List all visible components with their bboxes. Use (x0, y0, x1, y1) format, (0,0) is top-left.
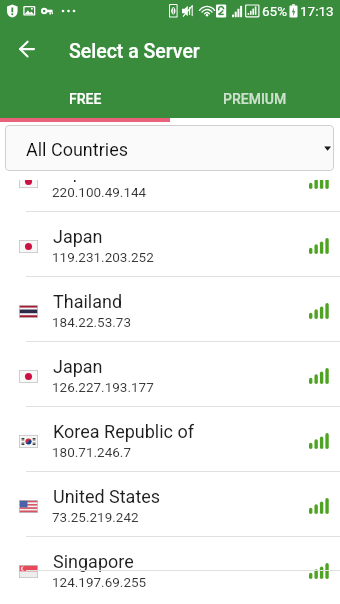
button[interactable]: Japan (0, 180, 340, 212)
button[interactable]: Back (11, 34, 43, 66)
staticText: 180.71.246.7 (52, 444, 131, 460)
staticText: FREE (69, 91, 102, 107)
button[interactable]: All Countries (5, 125, 334, 171)
staticText: 220.100.49.144 (52, 184, 147, 200)
button[interactable]: Japan (0, 212, 340, 277)
staticText: 126.227.193.177 (52, 379, 154, 395)
staticText: Japan (53, 226, 103, 247)
staticText: Japan (53, 356, 103, 377)
staticText: Korea Republic of (53, 421, 194, 442)
staticText: 119.231.203.252 (52, 249, 154, 265)
staticText: Thailand (53, 291, 123, 312)
staticText: PREMIUM (223, 91, 287, 107)
button[interactable]: Thailand (0, 277, 340, 342)
staticText: All Countries (26, 139, 129, 160)
staticText: 65% (262, 3, 288, 19)
button[interactable]: Korea Republic of (0, 407, 340, 472)
staticText: Japan (53, 180, 103, 182)
staticText: 73.25.219.242 (52, 509, 139, 525)
staticText: 124.197.69.255 (52, 574, 147, 590)
staticText: United States (53, 486, 161, 507)
staticText: Singapore (53, 551, 134, 572)
staticText: 184.22.53.73 (52, 314, 131, 330)
button[interactable]: FREE (0, 78, 170, 118)
button[interactable]: Singapore (0, 537, 340, 571)
button[interactable]: PREMIUM (170, 78, 340, 118)
staticText: Select a Server (69, 40, 200, 63)
button[interactable]: Japan (0, 342, 340, 407)
button[interactable]: United States (0, 472, 340, 537)
staticText: 17:13 (300, 3, 334, 19)
